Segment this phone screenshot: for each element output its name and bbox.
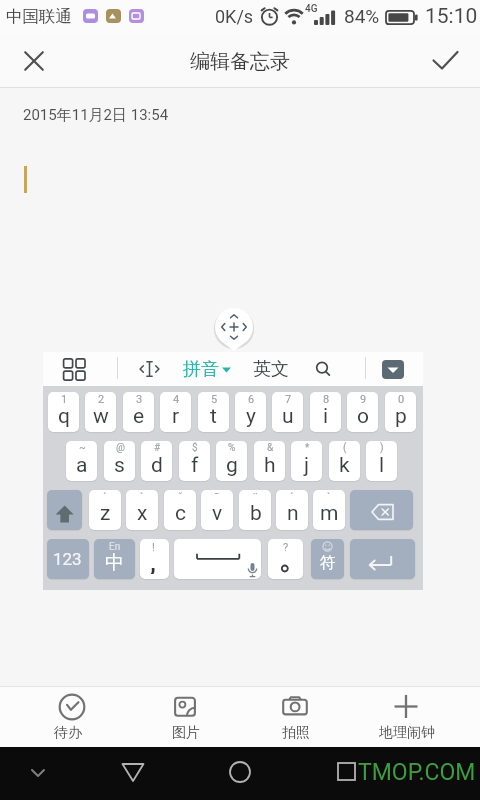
button[interactable]: 符	[311, 539, 344, 579]
staticText: ¨	[253, 491, 258, 504]
button[interactable]	[53, 352, 97, 386]
staticText: 9	[360, 393, 367, 406]
button[interactable]: (	[329, 441, 360, 481]
staticText: 拍照	[282, 724, 310, 742]
button[interactable]: ~	[66, 441, 97, 481]
staticText: ?	[283, 541, 289, 553]
staticText: a	[76, 453, 88, 478]
staticText: 123	[53, 549, 82, 569]
staticText: e	[133, 404, 145, 429]
button[interactable]: 4	[160, 392, 191, 432]
staticText: j	[304, 453, 310, 478]
button[interactable]: 图片	[134, 688, 236, 745]
button[interactable]: ¨	[239, 490, 271, 530]
staticText: @	[116, 442, 125, 454]
staticText: 4G	[305, 3, 318, 15]
button[interactable]: #	[141, 441, 172, 481]
button[interactable]: 6	[235, 392, 266, 432]
button[interactable]: 7	[272, 392, 303, 432]
button[interactable]: 待办	[21, 688, 123, 745]
staticText: 英文	[253, 358, 289, 381]
staticText: x	[137, 501, 148, 526]
staticText: 3	[136, 393, 143, 406]
staticText: t	[210, 404, 217, 429]
button[interactable]: *	[291, 441, 322, 481]
button[interactable]: 1	[48, 392, 79, 432]
staticText: 0K/s	[215, 6, 254, 27]
button[interactable]: 8	[310, 392, 341, 432]
button[interactable]	[424, 40, 468, 84]
staticText: f	[191, 453, 199, 478]
staticText: 图片	[172, 724, 200, 742]
staticText: En	[109, 541, 121, 553]
button[interactable]: 5	[198, 392, 229, 432]
staticText: u	[282, 404, 294, 429]
staticText: 地理闹钟	[379, 724, 435, 742]
staticText: ˉ	[214, 491, 220, 504]
button[interactable]	[174, 539, 261, 579]
staticText: *	[305, 442, 310, 454]
button[interactable]: `	[126, 490, 158, 530]
button[interactable]: ˇ	[164, 490, 196, 530]
button[interactable]: `	[313, 490, 345, 530]
staticText: &	[267, 442, 274, 454]
staticText: 8	[323, 393, 330, 406]
button[interactable]: $	[179, 441, 210, 481]
staticText: ´	[103, 491, 107, 504]
button[interactable]: ?	[268, 539, 303, 579]
button[interactable]: 地理闹钟	[355, 688, 457, 745]
button[interactable]	[130, 352, 170, 386]
button[interactable]	[325, 752, 369, 796]
button[interactable]	[175, 352, 237, 386]
button[interactable]	[350, 539, 415, 579]
staticText: 2015年11月2日 13:54	[23, 106, 169, 125]
staticText: m	[320, 501, 339, 526]
button[interactable]	[245, 352, 297, 386]
staticText: 中	[105, 551, 124, 575]
button[interactable]: ´	[276, 490, 308, 530]
button[interactable]	[218, 752, 262, 796]
staticText: (	[343, 442, 347, 454]
staticText: 4	[173, 393, 180, 406]
button[interactable]	[47, 490, 82, 530]
button[interactable]: 123	[47, 539, 89, 579]
staticText: q	[58, 404, 70, 429]
button[interactable]: ´	[89, 490, 121, 530]
button[interactable]: &	[254, 441, 285, 481]
staticText: l	[379, 453, 385, 478]
staticText: r	[172, 404, 180, 429]
button[interactable]	[16, 752, 60, 796]
button[interactable]: 0	[385, 392, 416, 432]
staticText: `	[327, 491, 331, 504]
staticText: ,	[150, 546, 156, 574]
button[interactable]: 9	[347, 392, 378, 432]
staticText: 待办	[54, 724, 82, 742]
staticText: 编辑备忘录	[190, 49, 290, 74]
button[interactable]: )	[366, 441, 397, 481]
button[interactable]: 拍照	[244, 688, 346, 745]
button[interactable]	[111, 752, 155, 796]
staticText: s	[114, 453, 125, 478]
staticText: #	[154, 442, 161, 454]
staticText: z	[100, 501, 111, 526]
button[interactable]	[382, 360, 404, 379]
button[interactable]: 3	[123, 392, 154, 432]
button[interactable]: En	[94, 539, 135, 579]
button[interactable]: @	[104, 441, 135, 481]
button[interactable]: 2	[85, 392, 116, 432]
button[interactable]	[205, 298, 263, 358]
staticText: y	[246, 404, 256, 429]
button[interactable]: !	[140, 539, 169, 579]
staticText: k	[339, 453, 350, 478]
button[interactable]	[350, 490, 413, 530]
button[interactable]	[303, 352, 343, 386]
staticText: !	[152, 541, 155, 553]
button[interactable]: ˉ	[201, 490, 233, 530]
staticText: ˇ	[178, 491, 183, 504]
button[interactable]	[12, 40, 56, 84]
staticText: $	[192, 442, 198, 454]
staticText: b	[250, 501, 262, 526]
staticText: o	[357, 404, 369, 429]
button[interactable]: %	[216, 441, 247, 481]
staticText: )	[380, 442, 384, 454]
